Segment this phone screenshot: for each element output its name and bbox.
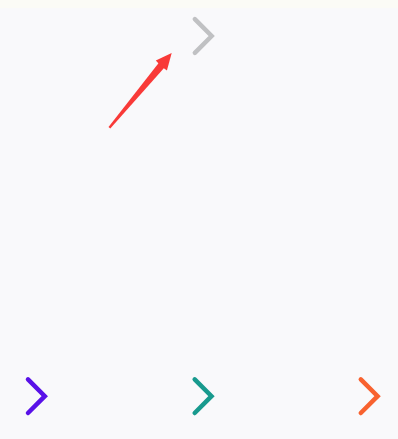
button[interactable]: Continue bbox=[179, 372, 227, 420]
button[interactable]: Previous step bbox=[12, 372, 60, 420]
button[interactable]: Expand bbox=[179, 12, 227, 60]
button[interactable]: Next step bbox=[345, 372, 393, 420]
